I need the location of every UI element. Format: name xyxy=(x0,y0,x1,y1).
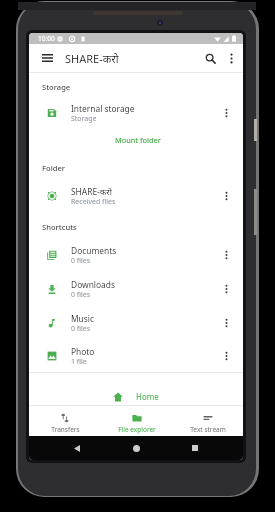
button[interactable]: More xyxy=(216,245,236,265)
button[interactable]: Recents xyxy=(184,437,206,459)
staticText: 0 files xyxy=(71,324,91,334)
button[interactable]: Transfers xyxy=(29,406,101,436)
staticText: SHARE-करो xyxy=(65,51,119,66)
button[interactable]: More xyxy=(216,103,236,123)
button[interactable]: Menu xyxy=(35,46,59,70)
staticText: Internal storage xyxy=(71,103,135,114)
staticText: File explorer xyxy=(118,425,156,434)
button[interactable]: Search xyxy=(199,47,221,69)
button[interactable]: Downloads xyxy=(29,272,243,306)
staticText: 0 files xyxy=(71,290,91,300)
button[interactable]: More xyxy=(216,186,236,206)
button[interactable]: Home xyxy=(107,388,165,405)
button[interactable]: SHARE-करो xyxy=(29,180,243,212)
button[interactable]: File explorer xyxy=(101,406,172,436)
staticText: Storage xyxy=(42,82,71,92)
staticText: 0 files xyxy=(71,256,91,266)
staticText: Music xyxy=(71,313,95,324)
button[interactable]: Home xyxy=(125,437,147,459)
staticText: Transfers xyxy=(51,425,80,434)
staticText: Home xyxy=(136,391,159,402)
staticText: 1 file xyxy=(71,357,87,367)
staticText: Storage xyxy=(71,114,97,124)
button[interactable]: Mount folder xyxy=(105,132,167,148)
button[interactable]: Text stream xyxy=(172,406,243,436)
staticText: Documents xyxy=(71,245,117,256)
staticText: Mount folder xyxy=(115,135,161,145)
button[interactable]: Music xyxy=(29,306,243,340)
button[interactable]: Internal storage xyxy=(29,97,243,129)
button[interactable]: Photo xyxy=(29,340,243,372)
button[interactable]: Back xyxy=(66,437,88,459)
button[interactable]: More options xyxy=(220,47,242,69)
staticText: Photo xyxy=(71,346,95,357)
staticText: Shortcuts xyxy=(42,222,77,232)
staticText: Text stream xyxy=(190,425,226,434)
button[interactable]: More xyxy=(216,313,236,333)
button[interactable]: More xyxy=(216,346,236,366)
staticText: SHARE-करो xyxy=(71,186,112,197)
staticText: Received files xyxy=(71,197,116,207)
button[interactable]: More xyxy=(216,279,236,299)
staticText: 10:00 xyxy=(38,34,55,43)
staticText: Folder xyxy=(42,163,65,173)
button[interactable]: Documents xyxy=(29,238,243,272)
staticText: Downloads xyxy=(71,279,115,290)
